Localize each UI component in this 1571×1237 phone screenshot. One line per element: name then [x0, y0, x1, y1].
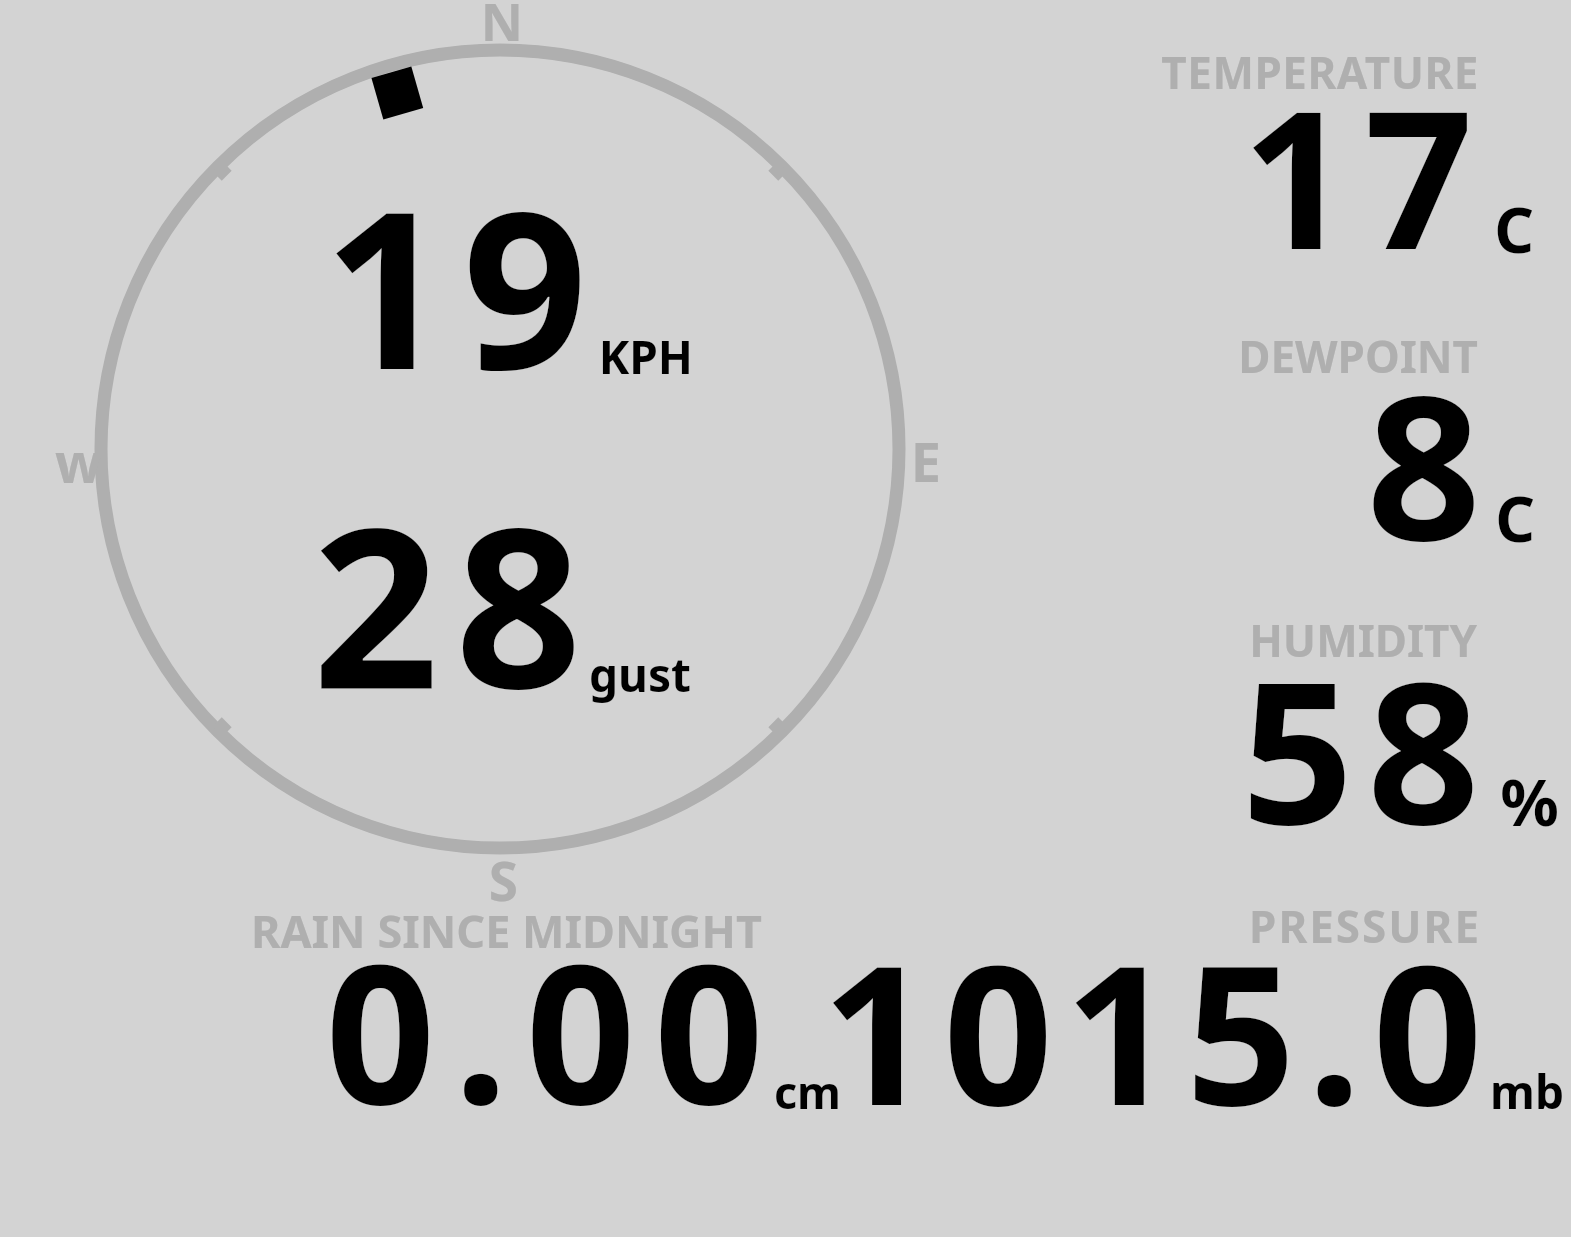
staticText: gust: [0, 643, 691, 706]
button[interactable]: Pressure 1015.0 millibar: [845, 898, 1571, 1123]
staticText: KPH: [0, 325, 693, 388]
staticText: C: [0, 187, 1534, 271]
staticText: 8: [0, 326, 1493, 598]
staticText: 1015.0: [0, 900, 1494, 1162]
staticText: TEMPERATURE: [0, 42, 1479, 102]
staticText: 19: [0, 136, 602, 433]
staticText: N: [0, 0, 523, 56]
button[interactable]: Rain since midnight 0.00 centimetres: [250, 905, 845, 1123]
staticText: S: [0, 844, 518, 916]
staticText: PRESSURE: [0, 896, 1481, 956]
staticText: %: [0, 757, 1559, 846]
button[interactable]: Temperature 17 degrees Celsius: [1140, 40, 1571, 270]
staticText: E: [0, 424, 941, 498]
staticText: 0.00: [0, 899, 782, 1161]
staticText: HUMIDITY: [0, 610, 1477, 670]
staticText: 28: [0, 452, 598, 753]
button[interactable]: Dewpoint 8 degrees Celsius: [1140, 325, 1571, 555]
staticText: w: [0, 424, 102, 499]
staticText: C: [0, 476, 1535, 560]
staticText: RAIN SINCE MIDNIGHT: [0, 900, 762, 961]
button[interactable]: Wind speed 19 kilometres per hour: [300, 190, 700, 390]
staticText: 17: [0, 46, 1487, 305]
button[interactable]: Humidity 58 percent: [1140, 610, 1571, 840]
staticText: DEWPOINT: [0, 326, 1478, 386]
staticText: 58: [0, 614, 1493, 881]
staticText: cm: [0, 1061, 841, 1122]
button[interactable]: Wind direction dial, north north west: [88, 37, 912, 861]
staticText: mb: [0, 1060, 1564, 1123]
button[interactable]: Wind gust 28 kilometres per hour: [300, 505, 700, 710]
